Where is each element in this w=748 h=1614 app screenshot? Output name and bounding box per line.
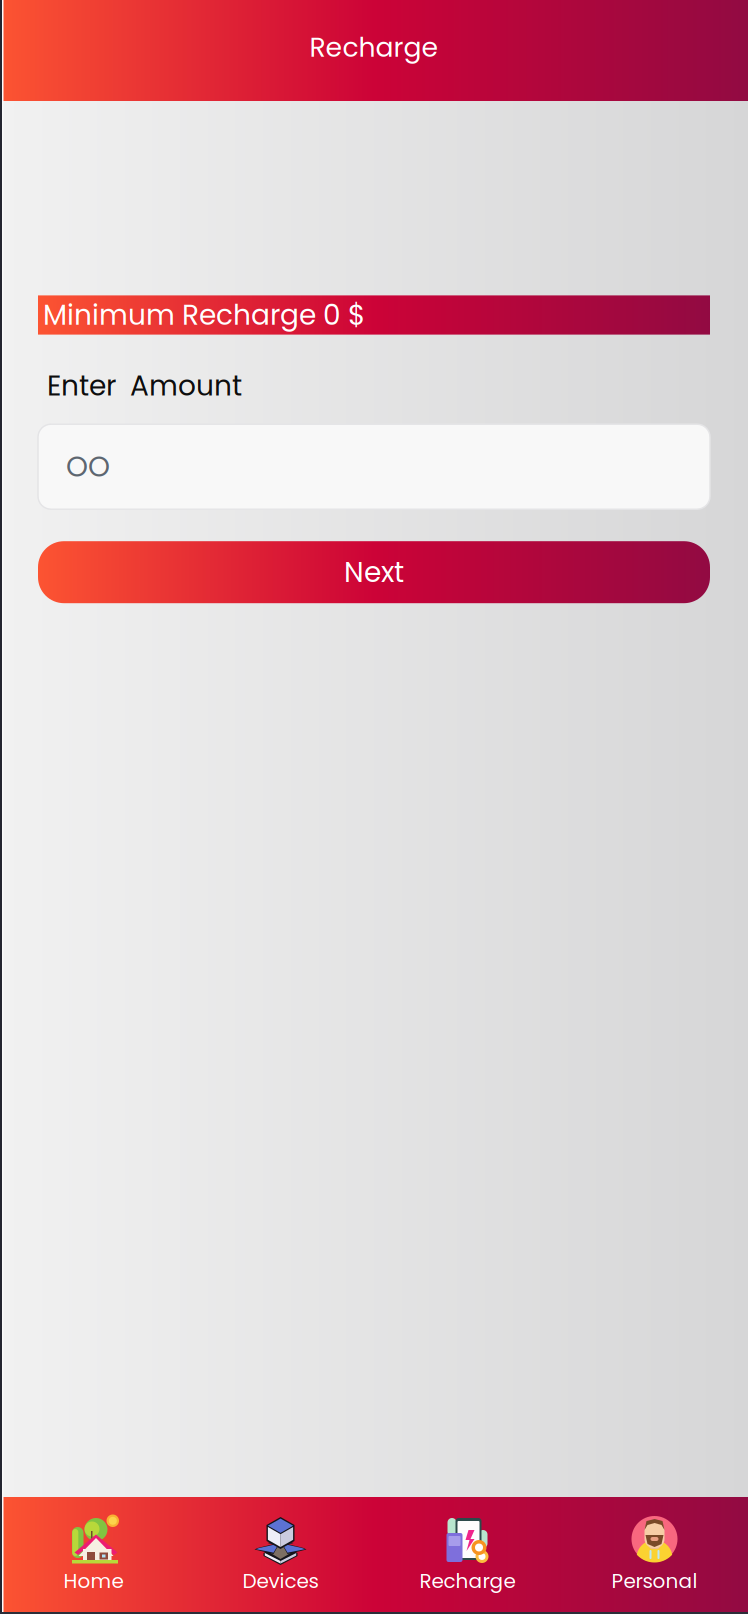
button[interactable]: Next bbox=[38, 541, 710, 603]
button[interactable]: Recharge bbox=[374, 1497, 561, 1614]
staticText: Devices bbox=[242, 1567, 318, 1595]
staticText: Minimum Recharge 0 $ bbox=[43, 295, 365, 335]
staticText: Home bbox=[63, 1567, 123, 1595]
button[interactable]: OO bbox=[38, 424, 710, 509]
staticText: Recharge bbox=[309, 29, 438, 66]
staticText: Enter Amount bbox=[47, 366, 242, 405]
staticText: Personal bbox=[611, 1567, 697, 1595]
button[interactable]: Devices bbox=[187, 1497, 374, 1614]
button[interactable]: Personal bbox=[561, 1497, 748, 1614]
button[interactable]: Home bbox=[0, 1497, 187, 1614]
staticText: Recharge bbox=[419, 1567, 515, 1595]
staticText: OO bbox=[66, 447, 110, 486]
staticText: Next bbox=[344, 553, 404, 592]
